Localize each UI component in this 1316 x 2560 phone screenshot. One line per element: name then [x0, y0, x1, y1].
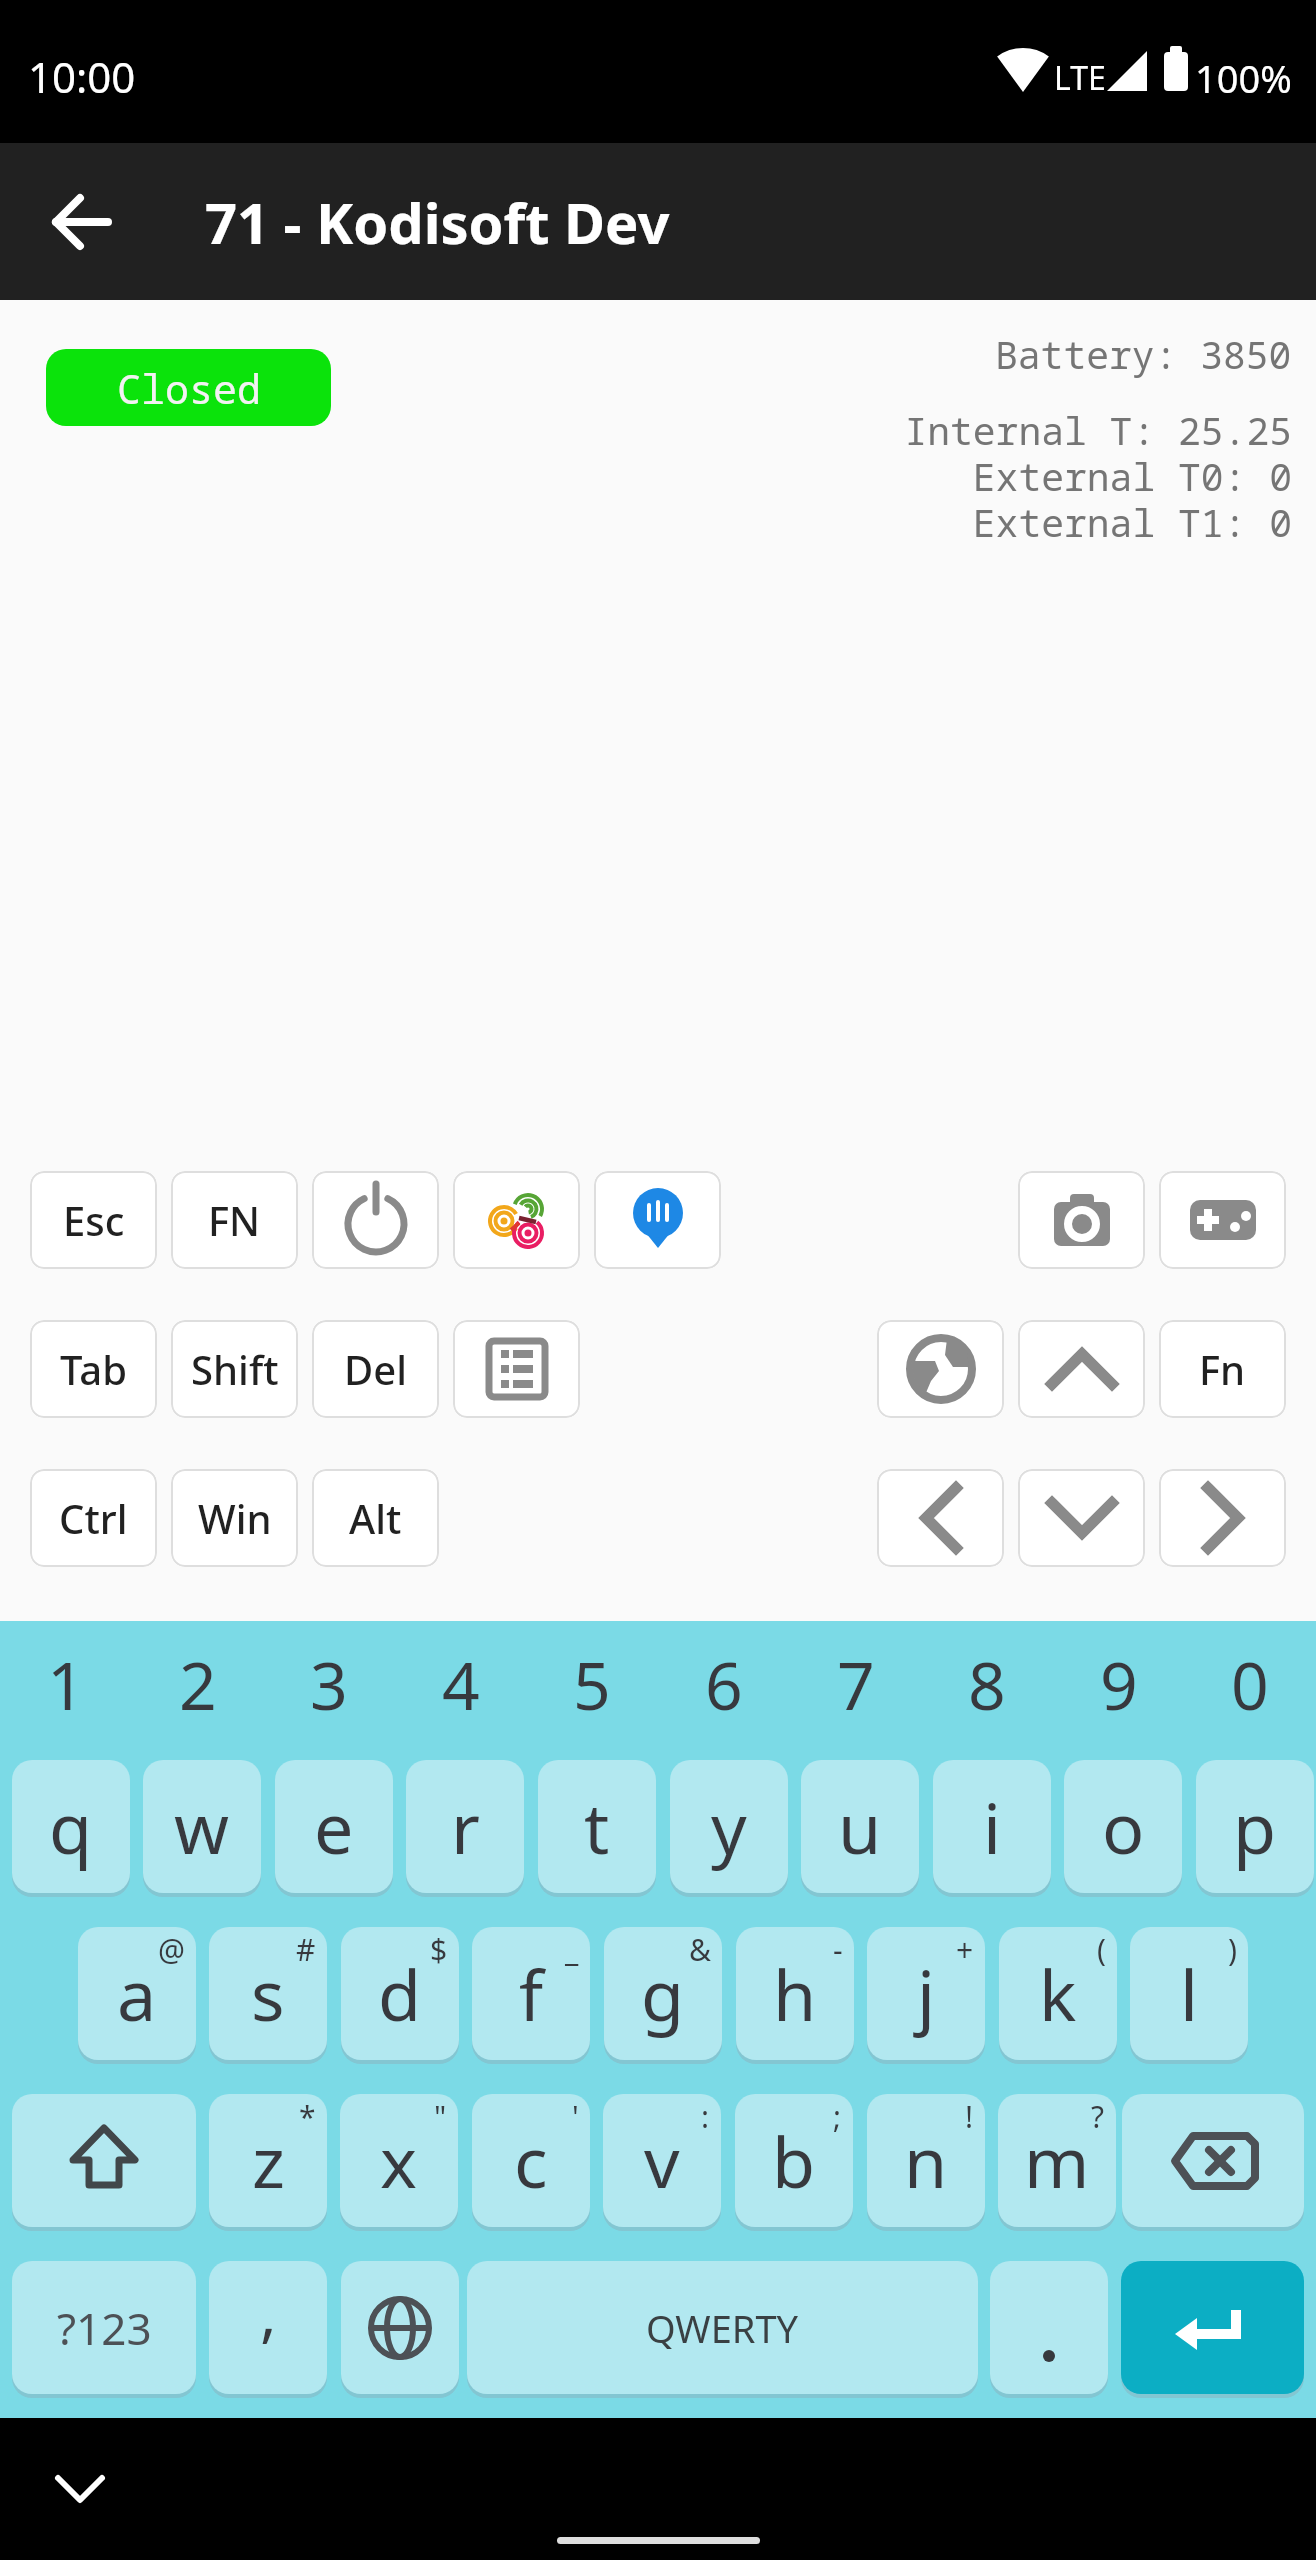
button[interactable]: [1122, 2094, 1304, 2227]
button[interactable]: j: [867, 1927, 985, 2060]
button[interactable]: ?123: [12, 2261, 196, 2394]
staticText: QWERTY: [646, 2302, 799, 2354]
button[interactable]: m: [998, 2094, 1116, 2227]
button[interactable]: 3: [263, 1624, 395, 1744]
staticText: 2: [179, 1639, 217, 1729]
button[interactable]: g: [604, 1927, 722, 2060]
button[interactable]: 7: [790, 1624, 922, 1744]
button[interactable]: Fn: [1159, 1320, 1286, 1418]
button[interactable]: [312, 1171, 439, 1269]
staticText: 5: [573, 1639, 611, 1729]
button[interactable]: [1018, 1171, 1145, 1269]
button[interactable]: ,: [209, 2261, 327, 2394]
staticText: 0: [1231, 1639, 1269, 1729]
staticText: o: [1102, 1779, 1145, 1874]
staticText: Fn: [1199, 1342, 1246, 1396]
staticText: Shift: [191, 1342, 279, 1396]
button[interactable]: 5: [526, 1624, 658, 1744]
button[interactable]: [42, 184, 118, 260]
staticText: @: [158, 1929, 185, 1970]
button[interactable]: [1159, 1171, 1286, 1269]
staticText: ": [434, 2096, 447, 2137]
staticText: a: [117, 1946, 157, 2041]
staticText: FN: [208, 1193, 261, 1247]
button[interactable]: FN: [171, 1171, 298, 1269]
button[interactable]: Tab: [30, 1320, 157, 1418]
button[interactable]: [1018, 1320, 1145, 1418]
button[interactable]: l: [1130, 1927, 1248, 2060]
button[interactable]: 2: [132, 1624, 264, 1744]
button[interactable]: 0: [1184, 1624, 1316, 1744]
button[interactable]: e: [275, 1760, 393, 1893]
button[interactable]: Shift: [171, 1320, 298, 1418]
staticText: h: [773, 1946, 817, 2041]
staticText: +: [956, 1929, 974, 1970]
button[interactable]: QWERTY: [467, 2261, 978, 2394]
button[interactable]: [594, 1171, 721, 1269]
staticText: 10:00: [28, 48, 136, 105]
button[interactable]: [1018, 1469, 1145, 1567]
button[interactable]: [1159, 1469, 1286, 1567]
staticText: :: [701, 2096, 710, 2137]
button[interactable]: Del: [312, 1320, 439, 1418]
button[interactable]: [877, 1320, 1004, 1418]
staticText: t: [584, 1779, 610, 1874]
staticText: k: [1039, 1946, 1077, 2041]
button[interactable]: [877, 1469, 1004, 1567]
button[interactable]: z: [209, 2094, 327, 2227]
staticText: 8: [968, 1639, 1006, 1729]
button[interactable]: 1: [0, 1624, 132, 1744]
staticText: &: [689, 1929, 711, 1970]
button[interactable]: 8: [921, 1624, 1053, 1744]
staticText: g: [641, 1946, 685, 2041]
staticText: d: [378, 1946, 422, 2041]
button[interactable]: u: [801, 1760, 919, 1893]
button[interactable]: t: [538, 1760, 656, 1893]
staticText: 1: [47, 1639, 85, 1729]
button[interactable]: Win: [171, 1469, 298, 1567]
button[interactable]: v: [603, 2094, 721, 2227]
button[interactable]: 6: [658, 1624, 790, 1744]
button[interactable]: y: [670, 1760, 788, 1893]
button[interactable]: 4: [395, 1624, 527, 1744]
button[interactable]: [453, 1171, 580, 1269]
button[interactable]: q: [12, 1760, 130, 1893]
button[interactable]: h: [736, 1927, 854, 2060]
button[interactable]: Alt: [312, 1469, 439, 1567]
button[interactable]: w: [143, 1760, 261, 1893]
button[interactable]: i: [933, 1760, 1051, 1893]
button[interactable]: o: [1064, 1760, 1182, 1893]
button[interactable]: x: [340, 2094, 458, 2227]
button[interactable]: k: [999, 1927, 1117, 2060]
staticText: b: [772, 2113, 816, 2208]
button[interactable]: 9: [1053, 1624, 1185, 1744]
button[interactable]: [40, 2448, 120, 2528]
staticText: 71 - Kodisoft Dev: [205, 184, 670, 260]
button[interactable]: r: [406, 1760, 524, 1893]
staticText: c: [514, 2113, 548, 2208]
button[interactable]: p: [1196, 1760, 1314, 1893]
button[interactable]: Closed: [46, 349, 331, 426]
button[interactable]: a: [78, 1927, 196, 2060]
staticText: ): [1228, 1929, 1237, 1970]
button[interactable]: n: [867, 2094, 985, 2227]
staticText: q: [49, 1779, 93, 1874]
staticText: u: [838, 1779, 882, 1874]
staticText: -: [833, 1929, 843, 1970]
button[interactable]: Esc: [30, 1171, 157, 1269]
staticText: Tab: [60, 1342, 127, 1396]
button[interactable]: Ctrl: [30, 1469, 157, 1567]
staticText: w: [174, 1779, 230, 1874]
button[interactable]: c: [472, 2094, 590, 2227]
staticText: Win: [198, 1491, 272, 1545]
button[interactable]: [1121, 2261, 1304, 2394]
button[interactable]: s: [209, 1927, 327, 2060]
button[interactable]: [341, 2261, 459, 2394]
button[interactable]: d: [341, 1927, 459, 2060]
button[interactable]: [990, 2261, 1108, 2394]
button[interactable]: [453, 1320, 580, 1418]
button[interactable]: [12, 2094, 196, 2227]
staticText: y: [711, 1779, 747, 1874]
button[interactable]: b: [735, 2094, 853, 2227]
button[interactable]: f: [472, 1927, 590, 2060]
